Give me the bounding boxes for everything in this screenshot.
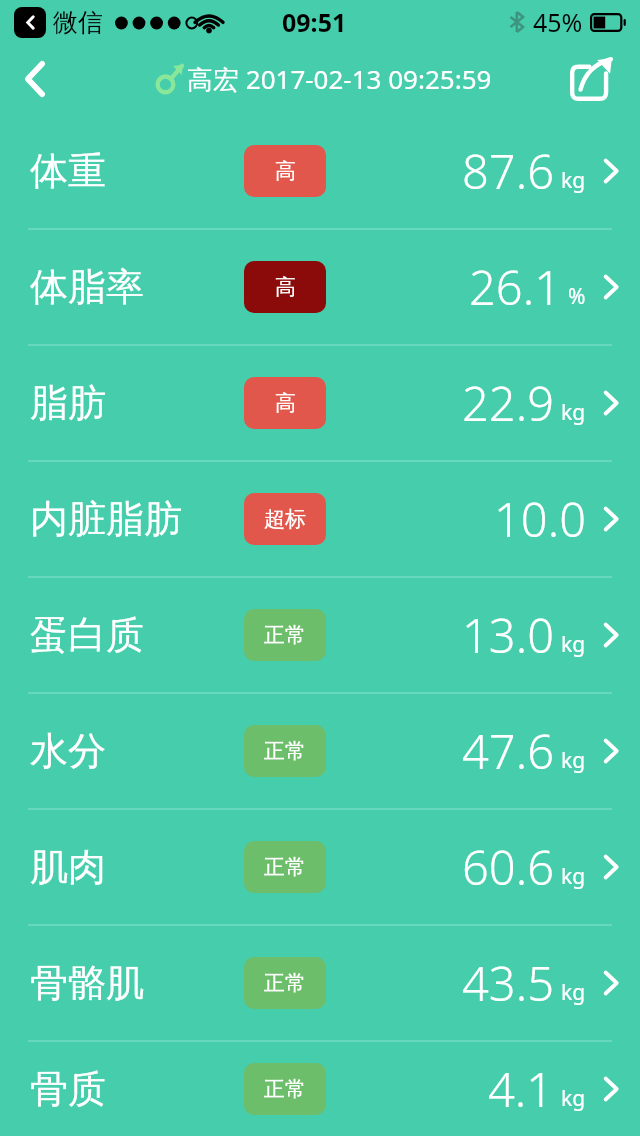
staticText: 4.1 [488,1057,554,1121]
button[interactable]: 体重 [0,114,640,228]
button[interactable]: 正常 [244,609,326,661]
staticText: 正常 [264,738,306,764]
staticText: 体脂率 [30,263,144,311]
button[interactable]: 体脂率 [0,230,640,344]
staticText: 骨质 [30,1065,106,1113]
staticText: 高宏 2017-02-13 09:25:59 [187,61,492,97]
button[interactable]: 蛋白质 [0,578,640,692]
staticText: 体重 [30,147,106,195]
button[interactable]: 正常 [244,725,326,777]
staticText: kg [561,746,586,775]
button[interactable]: 内脏脂肪 [0,462,640,576]
button[interactable]: 高 [244,377,326,429]
button[interactable]: Back [0,44,70,114]
button[interactable]: 高 [244,261,326,313]
staticText: 47.6 [462,719,554,783]
staticText: 09:51 [282,5,347,39]
button[interactable]: 超标 [244,493,326,545]
staticText: 10.0 [494,487,586,551]
staticText: 13.0 [462,603,554,667]
button[interactable]: 正常 [244,957,326,1009]
staticText: 87.6 [462,139,554,203]
staticText: 26.1 [469,255,561,319]
staticText: 蛋白质 [30,611,144,659]
button[interactable]: 水分 [0,694,640,808]
staticText: kg [561,862,586,891]
staticText: 22.9 [462,371,554,435]
staticText: 正常 [264,622,306,648]
staticText: 水分 [30,727,106,775]
button[interactable]: 正常 [244,1063,326,1115]
button[interactable]: 肌肉 [0,810,640,924]
staticText: 肌肉 [30,843,106,891]
staticText: 微信 [53,7,103,38]
staticText: kg [561,166,586,195]
staticText: kg [561,398,586,427]
staticText: 脂肪 [30,379,106,427]
staticText: 43.5 [462,951,554,1015]
staticText: 60.6 [462,835,554,899]
button[interactable]: 正常 [244,841,326,893]
button[interactable]: 脂肪 [0,346,640,460]
staticText: 骨骼肌 [30,959,144,1007]
button[interactable]: 高 [244,145,326,197]
staticText: 正常 [264,1076,306,1102]
button[interactable]: 骨骼肌 [0,926,640,1040]
button[interactable]: 骨质 [0,1042,640,1136]
staticText: 超标 [264,506,306,532]
staticText: 正常 [264,854,306,880]
staticText: % [568,282,586,311]
staticText: 内脏脂肪 [30,495,182,543]
button[interactable]: Share [560,47,624,111]
staticText: kg [561,978,586,1007]
staticText: 高 [275,390,296,416]
staticText: 45% [533,5,583,39]
staticText: 高 [275,158,296,184]
staticText: 高 [275,274,296,300]
staticText: 正常 [264,970,306,996]
staticText: kg [561,1084,586,1113]
staticText: kg [561,630,586,659]
